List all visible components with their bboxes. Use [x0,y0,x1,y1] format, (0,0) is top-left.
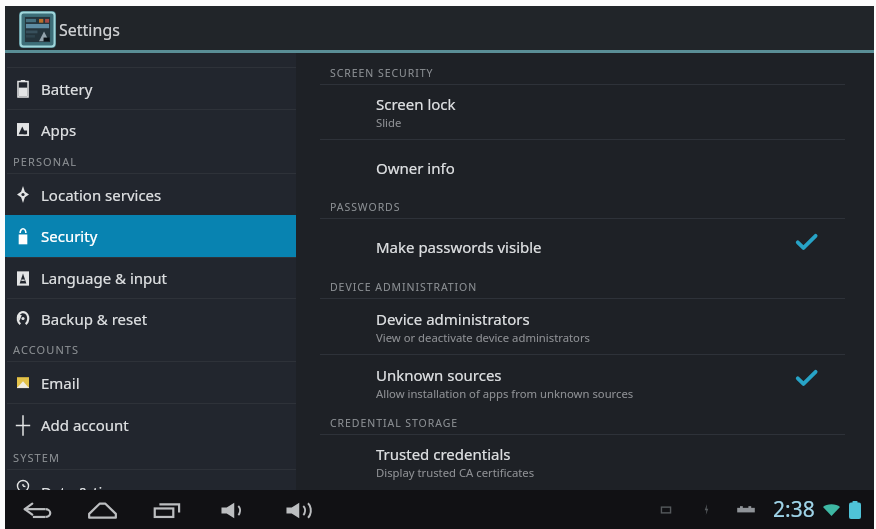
staticText: Language & input [41,268,167,288]
button[interactable]: Volume down [215,494,249,526]
staticText: PERSONAL [13,154,78,169]
button[interactable]: Add account [5,404,296,446]
staticText: Battery [41,79,93,99]
button[interactable]: Device administrators [296,299,874,354]
staticText: Trusted credentials [376,444,511,464]
button[interactable]: Battery [5,68,296,109]
button[interactable]: Language & input [5,258,296,298]
staticText: Security [41,226,98,246]
button[interactable]: Location services [5,174,296,215]
button[interactable]: Trusted credentials [296,435,874,489]
staticText: Add account [41,415,129,435]
staticText: Owner info [376,158,455,178]
staticText: Make passwords visible [376,237,542,257]
staticText: Slide [376,115,402,130]
staticText: PASSWORDS [330,200,401,214]
staticText: Location services [41,185,162,205]
button[interactable]: Volume up [280,494,314,526]
staticText: Backup & reset [41,309,148,329]
button[interactable]: Backup & reset [5,299,296,338]
button[interactable]: Unknown sources [296,355,874,411]
button[interactable]: Settings [5,6,874,53]
staticText: Display trusted CA certificates [376,465,535,480]
staticText: Screen lock [376,94,456,114]
staticText: Allow installation of apps from unknown … [376,386,634,401]
button[interactable]: Owner info [296,140,874,195]
staticText: Unknown sources [376,365,502,385]
button[interactable]: Apps [5,110,296,149]
staticText: ACCOUNTS [13,342,80,357]
staticText: Date & time [41,482,125,490]
staticText: SYSTEM [13,450,61,465]
staticText: DEVICE ADMINISTRATION [330,280,478,294]
staticText: Settings [59,19,120,41]
button[interactable]: Date & time [5,470,296,490]
button[interactable]: Make passwords visible [296,219,874,275]
staticText: CREDENTIAL STORAGE [330,416,459,430]
button[interactable]: Email [5,362,296,403]
button[interactable]: Recent apps [150,494,184,526]
staticText: 2:38 [773,495,815,524]
staticText: View or deactivate device administrators [376,330,591,345]
button[interactable]: Screen lock [296,85,874,139]
button[interactable]: Security [5,215,296,257]
staticText: Apps [41,120,77,140]
staticText: Email [41,373,80,393]
button[interactable]: Home [85,494,119,526]
button[interactable]: Back [20,494,54,526]
staticText: SCREEN SECURITY [330,66,434,80]
staticText: Device administrators [376,309,530,329]
